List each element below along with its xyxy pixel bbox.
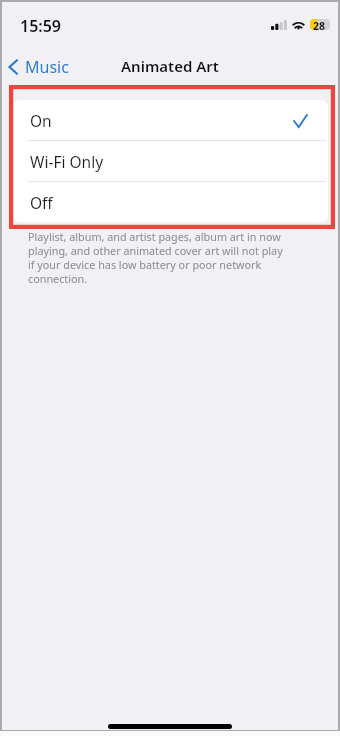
staticText: 15:59 [20,15,62,37]
staticText: Wi-Fi Only [30,151,104,172]
staticText: 28 [313,19,326,30]
button[interactable]: Music [2,52,77,82]
staticText: Playlist, album, and artist pages, album… [28,229,289,286]
button[interactable]: Wi-Fi Only [13,141,328,181]
button[interactable]: On [13,100,328,140]
staticText: Music [25,56,69,78]
button[interactable]: Off [13,182,328,222]
staticText: Animated Art [121,56,219,76]
staticText: Off [30,192,53,213]
staticText: On [30,110,52,131]
